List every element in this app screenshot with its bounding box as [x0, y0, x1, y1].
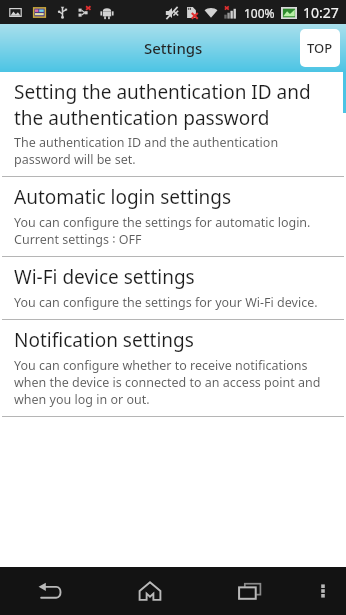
button[interactable]: Setting the authentication ID and the au…: [0, 72, 346, 176]
staticText: Automatic login settings: [14, 184, 232, 210]
button[interactable]: More options: [300, 567, 346, 615]
staticText: You can configure the settings for autom…: [14, 214, 311, 248]
staticText: Notification settings: [14, 327, 194, 353]
staticText: The authentication ID and the authentica…: [14, 134, 279, 168]
button[interactable]: Recent apps: [200, 567, 300, 615]
staticText: Setting the authentication ID and the au…: [14, 79, 311, 130]
staticText: 10:27: [303, 3, 339, 22]
staticText: You can configure whether to receive not…: [14, 357, 321, 408]
button[interactable]: TOP: [300, 29, 340, 67]
button[interactable]: Back: [0, 567, 100, 615]
button[interactable]: Wi-Fi device settings: [0, 257, 346, 319]
staticText: Settings: [144, 38, 203, 58]
staticText: You can configure the settings for your …: [14, 294, 318, 311]
button[interactable]: Notification settings: [0, 320, 346, 416]
button[interactable]: Home: [100, 567, 200, 615]
staticText: Wi-Fi device settings: [14, 264, 195, 290]
staticText: TOP: [307, 39, 333, 57]
staticText: 100%: [244, 5, 275, 21]
button[interactable]: Automatic login settings: [0, 177, 346, 256]
